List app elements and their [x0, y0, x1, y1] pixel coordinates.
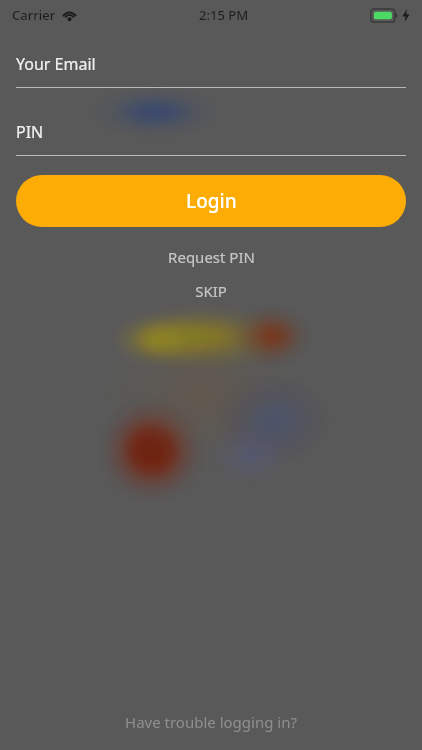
- staticText: SKIP: [195, 281, 227, 301]
- staticText: 2:15 PM: [199, 6, 249, 24]
- staticText: Your Email: [16, 53, 96, 75]
- button[interactable]: Your Email: [16, 49, 406, 88]
- button[interactable]: Have trouble logging in?: [0, 700, 422, 744]
- staticText: PIN: [16, 121, 44, 143]
- staticText: Have trouble logging in?: [125, 712, 297, 732]
- staticText: Carrier: [12, 6, 56, 24]
- staticText: Request PIN: [168, 247, 255, 267]
- button[interactable]: Request PIN: [16, 243, 406, 271]
- button[interactable]: SKIP: [16, 278, 406, 304]
- button[interactable]: Login: [16, 175, 406, 227]
- staticText: Login: [186, 188, 237, 214]
- button[interactable]: PIN: [16, 117, 406, 156]
